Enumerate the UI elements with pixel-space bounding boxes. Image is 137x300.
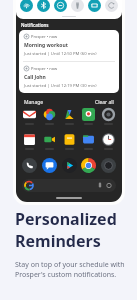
button[interactable]: Auto rotate bbox=[105, 0, 118, 12]
staticText: Clear all bbox=[95, 99, 114, 106]
button[interactable]: Google search bbox=[22, 179, 116, 192]
button[interactable]: Gmail bbox=[23, 108, 36, 121]
button[interactable]: Maps bbox=[82, 108, 95, 121]
staticText: Morning workout bbox=[24, 42, 68, 49]
button[interactable]: Meet bbox=[43, 133, 56, 146]
staticText: Prosper • now bbox=[31, 66, 58, 71]
button[interactable]: Flashlight bbox=[71, 0, 84, 12]
button[interactable]: Settings bbox=[102, 108, 115, 121]
button[interactable]: Bluetooth bbox=[37, 0, 50, 12]
button[interactable]: Photos bbox=[43, 108, 56, 121]
staticText: Just started | Until 12:19 PM (30 min) bbox=[24, 83, 97, 89]
button[interactable]: Drive bbox=[63, 108, 76, 121]
button[interactable]: Prosper • now bbox=[19, 30, 119, 61]
button[interactable]: Clear all bbox=[93, 97, 116, 108]
staticText: Manage bbox=[24, 99, 44, 106]
button[interactable]: Messages bbox=[42, 158, 57, 173]
button[interactable]: Play Store bbox=[62, 158, 77, 173]
button[interactable]: Phone bbox=[22, 158, 37, 173]
staticText: Prosper • now bbox=[31, 34, 58, 39]
staticText: Just started | Until 12:50 PM (60 min) bbox=[24, 51, 97, 57]
button[interactable]: Wi-Fi bbox=[20, 0, 33, 12]
button[interactable]: Clock bbox=[102, 133, 115, 146]
button[interactable]: Prosper • now bbox=[19, 62, 119, 93]
staticText: Stay on top of your schedule with bbox=[15, 260, 125, 270]
button[interactable]: Do not disturb bbox=[54, 0, 67, 12]
button[interactable]: Camera bbox=[101, 158, 116, 173]
button[interactable]: Keep bbox=[63, 133, 76, 146]
staticText: Notifications bbox=[21, 22, 49, 28]
staticText: Prosper's custom notifications. bbox=[15, 270, 117, 280]
staticText: Call John bbox=[24, 74, 46, 81]
button[interactable]: Manage bbox=[22, 97, 46, 108]
button[interactable]: Data saver bbox=[88, 0, 101, 12]
button[interactable]: Files bbox=[82, 133, 95, 146]
staticText: Personalized bbox=[15, 208, 117, 230]
button[interactable]: Chrome bbox=[81, 158, 96, 173]
button[interactable]: Calendar bbox=[23, 133, 36, 146]
staticText: Reminders bbox=[15, 230, 101, 252]
